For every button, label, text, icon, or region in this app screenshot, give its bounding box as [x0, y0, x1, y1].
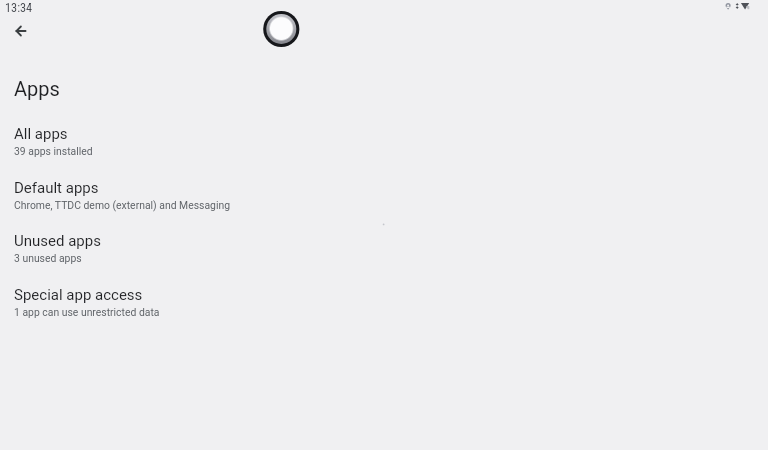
staticText: 3 unused apps	[14, 252, 82, 264]
staticText: Chrome, TTDC demo (external) and Messagi…	[14, 199, 230, 211]
button[interactable]: Unused apps	[0, 222, 768, 274]
button[interactable]: All apps	[0, 115, 768, 167]
staticText: 13:34	[5, 1, 33, 15]
button[interactable]: Special app access	[0, 276, 768, 328]
staticText: Default apps	[14, 179, 99, 197]
staticText: 1 app can use unrestricted data	[14, 306, 160, 318]
staticText: Apps	[14, 77, 60, 100]
staticText: Special app access	[14, 286, 143, 304]
staticText: 39 apps installed	[14, 145, 93, 157]
button[interactable]: Default apps	[0, 169, 768, 221]
button[interactable]: Navigate up	[5, 15, 37, 47]
staticText: Unused apps	[14, 232, 101, 250]
staticText: All apps	[14, 125, 68, 143]
